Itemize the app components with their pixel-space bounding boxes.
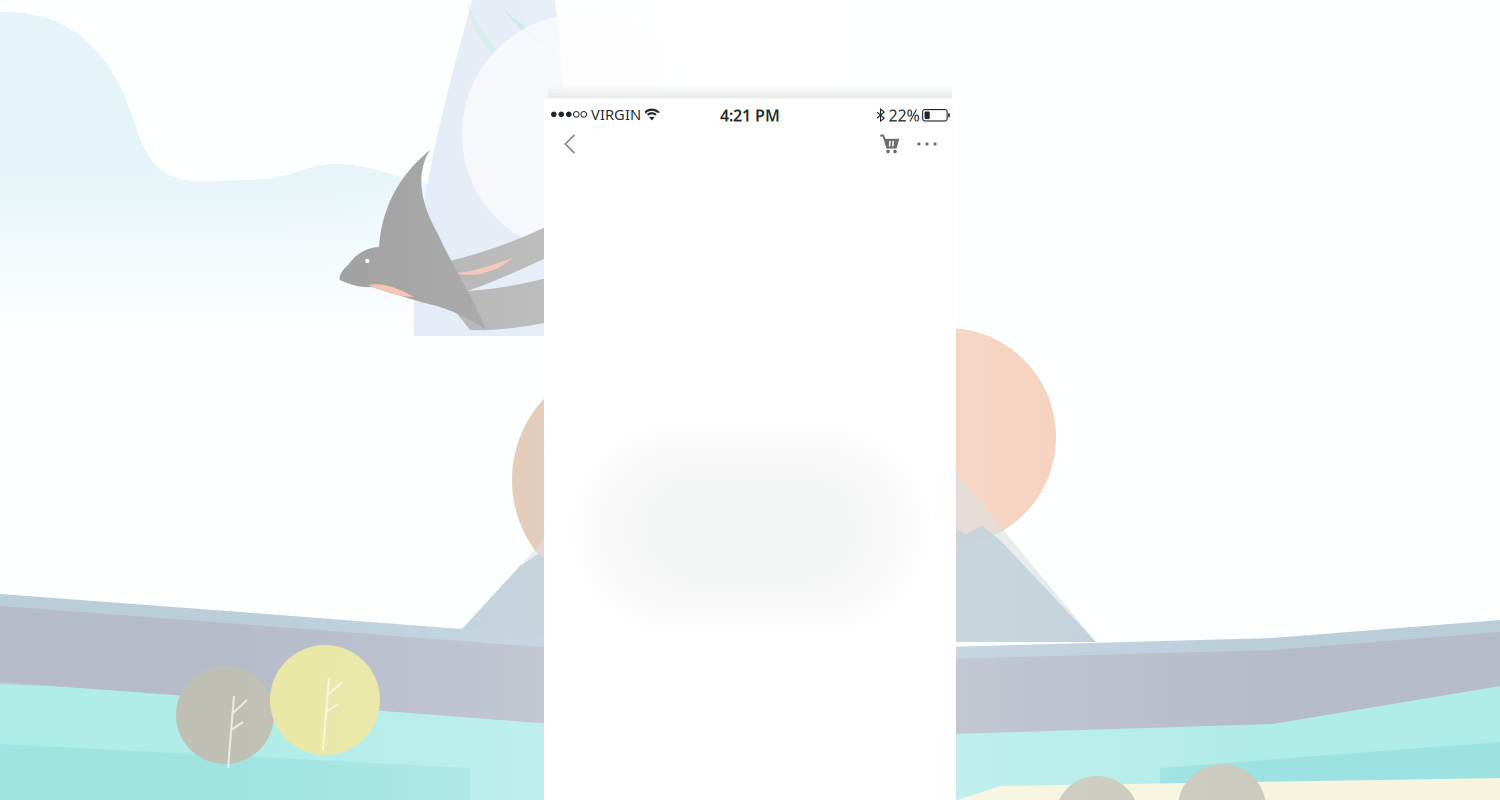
button[interactable]: More options [909,125,945,163]
button[interactable]: Cart [871,125,909,163]
staticText: 4:21 PM [720,105,780,126]
staticText: 22% [888,105,919,126]
button[interactable]: Back [544,125,596,163]
staticText: VIRGIN [591,105,641,124]
